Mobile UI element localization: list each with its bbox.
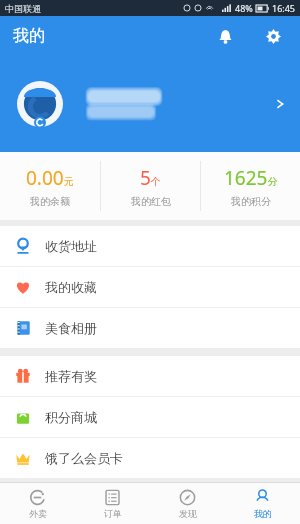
staticText: 48% xyxy=(235,2,253,14)
button[interactable]: 发现 xyxy=(150,483,225,524)
button[interactable]: 1625分 xyxy=(201,152,300,220)
button[interactable]: 我的收藏 xyxy=(0,267,300,307)
staticText: 0.00元 xyxy=(26,165,74,191)
button[interactable]: 推荐有奖 xyxy=(0,356,300,396)
staticText: 饿了么会员卡 xyxy=(45,450,123,466)
button[interactable]: 我的 xyxy=(225,483,300,524)
button[interactable]: 订单 xyxy=(75,483,150,524)
staticText: 发现 xyxy=(179,508,197,519)
staticText: 1625分 xyxy=(224,165,278,191)
staticText: 我的积分 xyxy=(231,195,271,208)
staticText: 积分商城 xyxy=(45,409,97,425)
staticText: 16:45 xyxy=(272,2,296,14)
button[interactable]: 美食相册 xyxy=(0,308,300,348)
staticText: 收货地址 xyxy=(45,238,97,254)
staticText: 我的 xyxy=(13,26,45,46)
button[interactable] xyxy=(0,56,300,152)
button[interactable]: 5个 xyxy=(101,152,200,220)
button[interactable]: 积分商城 xyxy=(0,397,300,437)
button[interactable]: 收货地址 xyxy=(0,226,300,266)
staticText: 5个 xyxy=(140,165,161,191)
staticText: 推荐有奖 xyxy=(45,368,97,384)
button[interactable]: 饿了么会员卡 xyxy=(0,438,300,478)
staticText: 我的红包 xyxy=(131,195,171,208)
staticText: 中国联通 xyxy=(5,3,41,14)
button[interactable]: 0.00元 xyxy=(0,152,100,220)
staticText: 我的余额 xyxy=(30,195,70,208)
button[interactable]: 外卖 xyxy=(0,483,75,524)
staticText: 外卖 xyxy=(29,508,47,519)
button[interactable]: Settings xyxy=(260,23,286,49)
staticText: 我的收藏 xyxy=(45,279,97,295)
staticText: 我的 xyxy=(254,508,272,519)
button[interactable]: Notifications xyxy=(212,23,238,49)
staticText: 订单 xyxy=(104,508,122,519)
staticText: 美食相册 xyxy=(45,320,97,336)
